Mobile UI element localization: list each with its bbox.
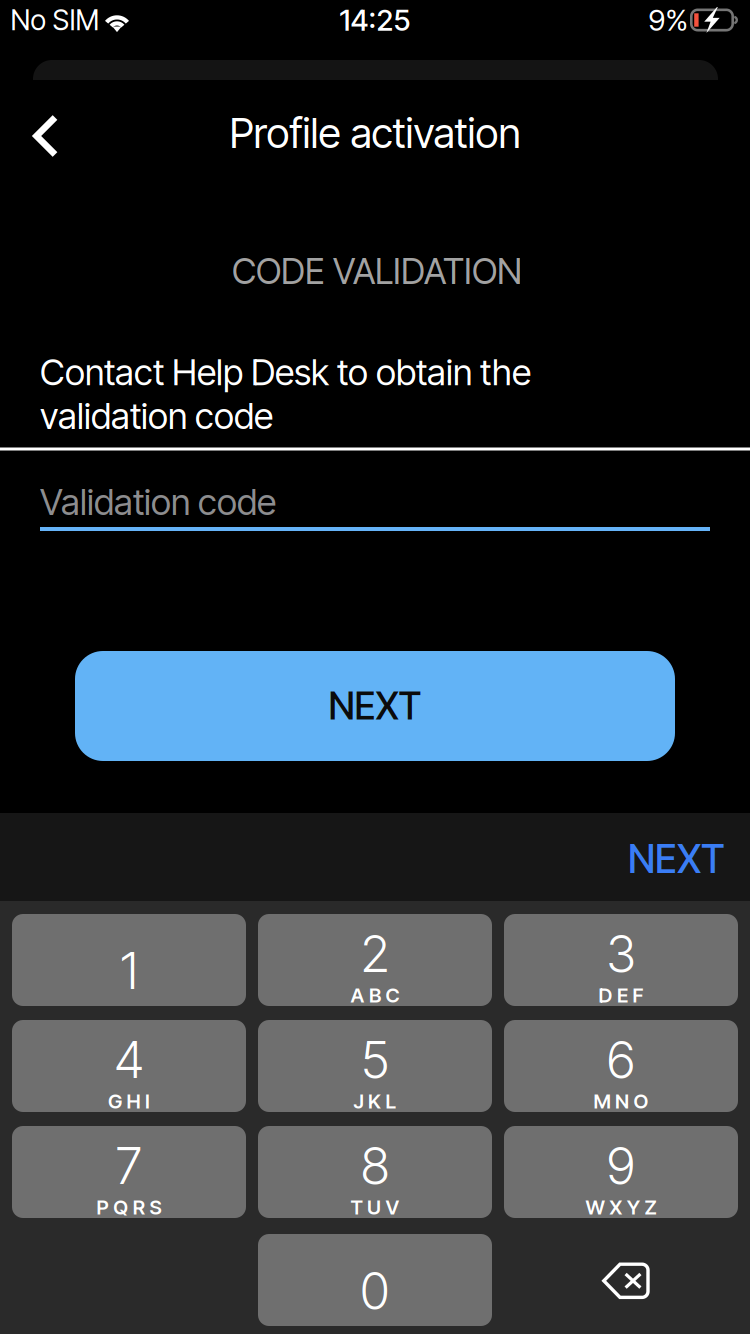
staticText: No SIM: [10, 3, 99, 37]
button[interactable]: Back: [2, 96, 90, 176]
staticText: 0: [360, 1260, 390, 1321]
staticText: 9: [606, 1135, 635, 1196]
button[interactable]: Delete: [504, 1233, 738, 1325]
staticText: 9%: [648, 2, 687, 38]
button[interactable]: 3: [504, 914, 738, 1006]
staticText: ABC: [350, 983, 400, 1007]
staticText: 4: [114, 1029, 144, 1090]
button[interactable]: 7: [12, 1126, 246, 1218]
staticText: TUV: [350, 1195, 400, 1219]
staticText: 14:25: [339, 2, 410, 38]
staticText: WXYZ: [586, 1195, 656, 1219]
staticText: Profile activation: [229, 108, 520, 158]
button[interactable]: 9: [504, 1126, 738, 1218]
staticText: 1: [120, 940, 138, 1001]
staticText: 7: [115, 1135, 142, 1196]
button[interactable]: 1: [12, 914, 246, 1006]
staticText: JKL: [353, 1089, 397, 1113]
staticText: PQRS: [97, 1195, 161, 1219]
button[interactable]: 0: [258, 1234, 492, 1326]
staticText: 2: [360, 923, 389, 984]
button[interactable]: NEXT: [75, 651, 675, 761]
button[interactable]: 2: [258, 914, 492, 1006]
button[interactable]: 8: [258, 1126, 492, 1218]
staticText: GHI: [108, 1089, 150, 1113]
staticText: Contact Help Desk to obtain the validati…: [40, 350, 531, 437]
button[interactable]: 4: [12, 1020, 246, 1112]
staticText: 6: [606, 1029, 635, 1090]
staticText: 3: [606, 923, 636, 984]
staticText: NEXT: [628, 836, 725, 882]
button[interactable]: 6: [504, 1020, 738, 1112]
button[interactable]: NEXT: [606, 814, 738, 900]
staticText: MNO: [593, 1089, 649, 1113]
staticText: CODE VALIDATION: [232, 249, 522, 292]
staticText: Validation code: [40, 480, 276, 524]
staticText: 8: [360, 1135, 389, 1196]
button[interactable]: 5: [258, 1020, 492, 1112]
staticText: DEF: [598, 983, 644, 1007]
staticText: 5: [361, 1029, 389, 1090]
staticText: NEXT: [328, 683, 421, 729]
